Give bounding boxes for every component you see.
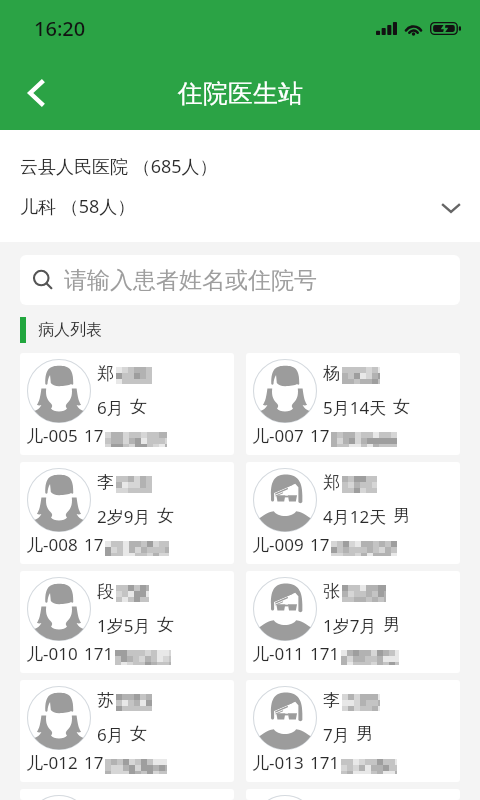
staticText: 张 [323,581,340,602]
staticText: 7月 [323,723,350,746]
staticText: 郑 [323,472,340,493]
staticText: 儿-013 [252,751,304,774]
staticText: 1岁7月 [323,614,377,637]
staticText: 6月 [97,723,124,746]
staticText: 儿-009 [252,533,304,556]
staticText: 4月12天 [323,505,387,528]
button[interactable]: 李 [246,680,460,782]
button[interactable]: 郑 [20,353,234,455]
staticText: 171 [310,642,340,665]
staticText: 17 [310,533,330,556]
staticText: 女 [393,396,410,417]
staticText: 1岁5月 [97,614,151,637]
staticText: 儿-012 [26,751,78,774]
button[interactable]: 杨 [246,353,460,455]
staticText: 郑 [97,363,114,384]
button[interactable]: Back [0,56,72,130]
staticText: 6月 [97,396,124,419]
staticText: 男 [383,614,400,635]
staticText: 171 [84,642,114,665]
staticText: 2岁9月 [97,505,151,528]
staticText: 儿科 （58人） [20,194,136,219]
staticText: 男 [393,505,410,526]
staticText: 17 [84,533,104,556]
button[interactable]: 请输入患者姓名或住院号 [20,255,460,305]
staticText: 杨 [323,363,340,384]
staticText: 171 [310,751,340,774]
staticText: 5月14天 [323,396,387,419]
staticText: 儿-007 [252,424,304,447]
staticText: 儿-011 [252,642,304,665]
button[interactable]: 李 [20,462,234,564]
button[interactable]: 苏 [20,680,234,782]
staticText: 段 [97,581,114,602]
button[interactable]: 郑 [246,462,460,564]
staticText: 17 [84,751,104,774]
staticText: 请输入患者姓名或住院号 [64,266,317,295]
button[interactable]: 王伯瑶 [246,789,460,800]
staticText: 住院医生站 [178,78,303,109]
staticText: 病人列表 [38,320,102,340]
staticText: 儿-005 [26,424,78,447]
staticText: 17 [84,424,104,447]
button[interactable]: 张 [246,571,460,673]
staticText: 女 [157,505,174,526]
staticText: 儿-008 [26,533,78,556]
staticText: 李 [323,690,340,711]
staticText: 儿-010 [26,642,78,665]
staticText: 女 [130,396,147,417]
staticText: 16:20 [34,15,86,42]
button[interactable]: 云县人民医院 （685人） [0,130,480,242]
button[interactable]: 黄黄黄 [20,789,234,800]
staticText: 云县人民医院 （685人） [20,154,218,179]
button[interactable]: 段 [20,571,234,673]
staticText: 17 [310,424,330,447]
staticText: 男 [356,723,373,744]
staticText: 李 [97,472,114,493]
staticText: 苏 [97,690,114,711]
staticText: 女 [157,614,174,635]
staticText: 女 [130,723,147,744]
